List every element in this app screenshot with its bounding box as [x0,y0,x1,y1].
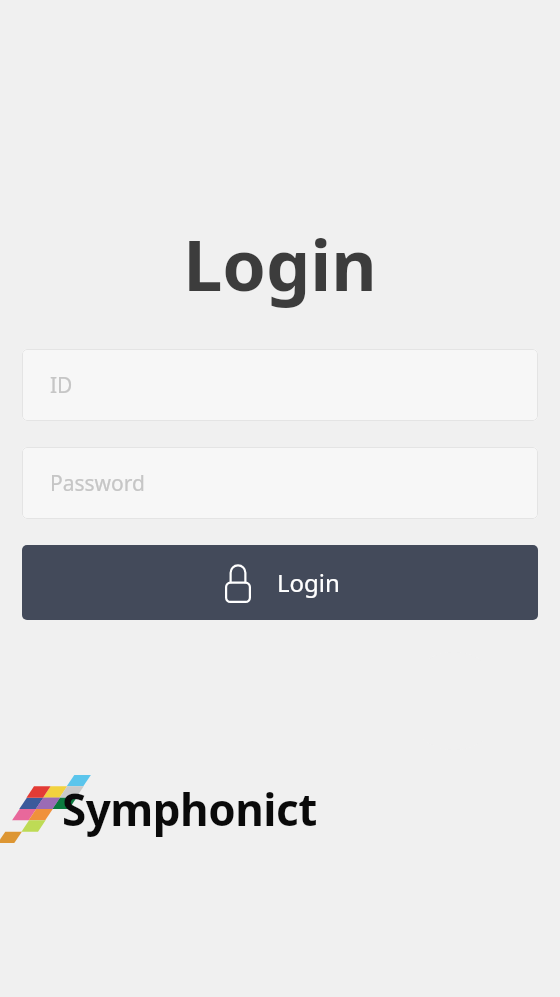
other: Lock [221,563,255,603]
button[interactable]: Lock [22,545,538,620]
staticText: Login [277,566,340,599]
staticText: Login [183,216,377,311]
button[interactable]: ID [22,349,538,421]
staticText: Symphonict [62,779,317,839]
staticText: Password [50,469,145,498]
button[interactable]: Password [22,447,538,519]
staticText: ID [50,371,73,400]
